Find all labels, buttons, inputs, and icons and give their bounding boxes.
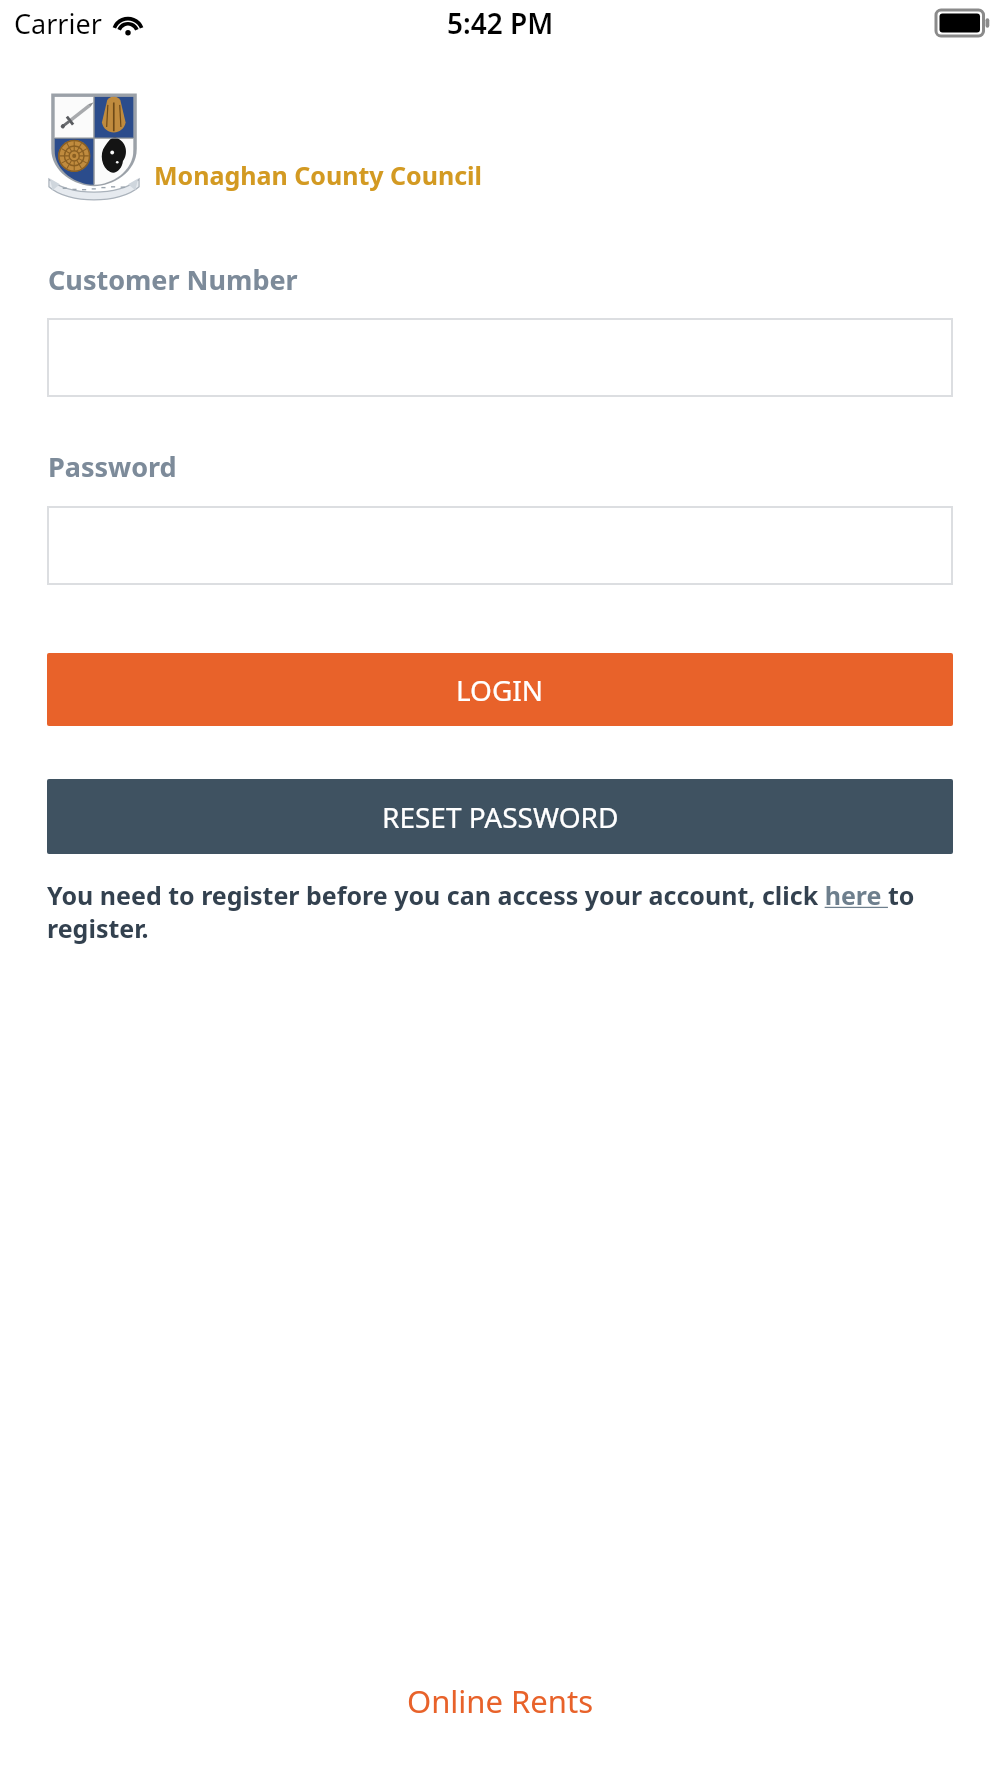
button[interactable]: LOGIN bbox=[47, 653, 953, 726]
staticText: Carrier bbox=[14, 5, 102, 42]
other: Monaghan County Council crest bbox=[48, 91, 140, 213]
staticText: 5:42 PM bbox=[447, 4, 554, 42]
button[interactable]: Online Rents bbox=[0, 1680, 1000, 1722]
button[interactable] bbox=[47, 318, 953, 397]
staticText: LOGIN bbox=[456, 671, 544, 709]
staticText: Customer Number bbox=[48, 261, 298, 298]
button[interactable] bbox=[47, 506, 953, 585]
staticText: Online Rents bbox=[407, 1680, 594, 1722]
staticText: You need to register before you can acce… bbox=[47, 878, 953, 945]
staticText: Password bbox=[48, 448, 177, 485]
button[interactable]: RESET PASSWORD bbox=[47, 779, 953, 854]
staticText: RESET PASSWORD bbox=[382, 798, 619, 836]
staticText: Monaghan County Council bbox=[154, 158, 483, 192]
